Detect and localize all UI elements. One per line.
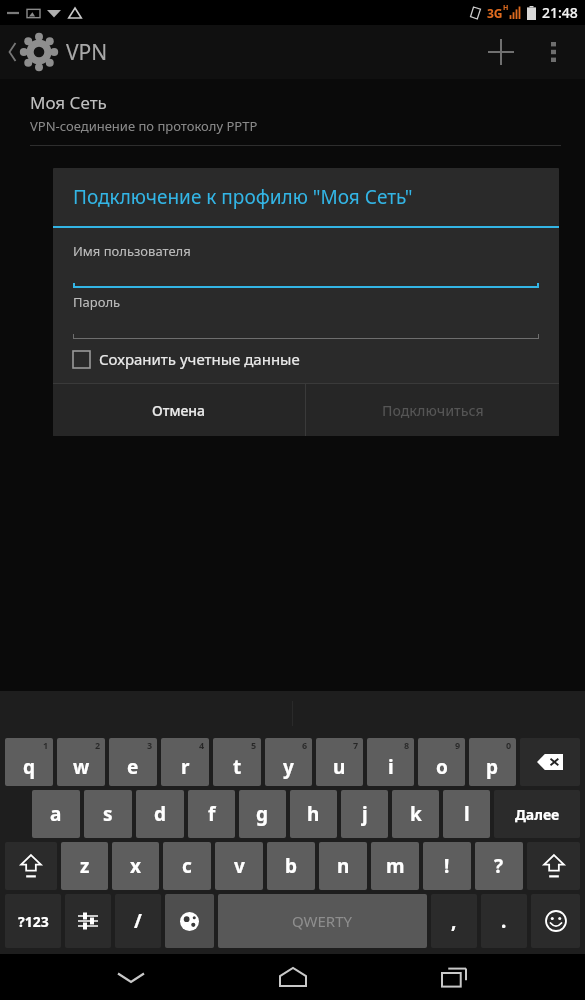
button[interactable]: z [61,842,108,890]
button[interactable]: Shift [527,842,580,890]
button[interactable]: l [443,790,490,838]
button[interactable]: Add VPN profile [477,28,525,76]
staticText: ! [444,853,450,879]
button[interactable]: Shift [5,842,57,890]
button[interactable]: ?123 [5,894,61,948]
button[interactable]: 2 [57,738,105,786]
button[interactable]: Change language [165,894,214,948]
button[interactable]: ! [423,842,471,890]
staticText: , [451,908,457,934]
button[interactable]: s [84,790,132,838]
button[interactable]: 6 [265,738,312,786]
staticText: 6 [302,739,308,751]
button[interactable]: b [267,842,315,890]
staticText: 2 [95,739,101,751]
staticText: r [181,754,190,780]
button[interactable]: Отмена [53,384,305,436]
button[interactable]: Back [8,33,108,71]
button[interactable]: More options [531,30,575,74]
staticText: QWERTY [292,911,353,931]
staticText: 7 [353,739,359,751]
button[interactable]: g [239,790,286,838]
staticText: x [130,853,141,879]
button[interactable]: / [115,894,161,948]
staticText: 0 [506,739,512,751]
button[interactable]: 3 [109,738,157,786]
button[interactable]: Space [218,894,427,948]
staticText: g [256,801,269,827]
button[interactable]: Подключиться [306,384,559,436]
staticText: Подключиться [382,401,484,420]
staticText: u [333,754,346,780]
staticText: w [73,754,90,780]
staticText: i [388,754,394,780]
button[interactable]: 0 [469,738,516,786]
staticText: 3 [147,739,153,751]
staticText: y [283,754,294,780]
button[interactable]: Settings [65,894,111,948]
button[interactable]: m [371,842,419,890]
staticText: k [410,801,422,827]
staticText: 3G [487,5,503,21]
button[interactable]: Далее [494,790,580,838]
button[interactable]: j [341,790,388,838]
staticText: Далее [515,805,560,824]
button[interactable]: h [290,790,337,838]
button[interactable]: 7 [316,738,363,786]
staticText: o [436,754,448,780]
staticText: b [285,853,298,879]
staticText: H [503,3,509,13]
button[interactable]: . [481,894,527,948]
button[interactable]: , [431,894,477,948]
staticText: d [154,801,167,827]
staticText: 5 [251,739,257,751]
staticText: Подключение к профилю "Моя Сеть" [73,184,413,210]
button[interactable]: 4 [161,738,209,786]
staticText: 21:48 [542,3,578,22]
staticText: . [501,908,507,934]
button[interactable]: f [188,790,235,838]
staticText: z [80,853,90,879]
staticText: 9 [455,739,461,751]
staticText: t [233,754,242,780]
button[interactable]: Backspace [520,738,580,786]
button[interactable]: ? [475,842,523,890]
staticText: 8 [404,739,410,751]
button[interactable]: c [163,842,211,890]
staticText: VPN-соединение по протоколу PPTP [30,117,258,135]
staticText: j [362,801,368,827]
button[interactable]: Recent apps [424,957,484,997]
button[interactable]: Hide keyboard [101,957,161,997]
button[interactable]: n [319,842,367,890]
staticText: Пароль [73,293,121,311]
staticText: ?123 [18,912,49,931]
staticText: c [182,853,192,879]
button[interactable]: Сохранить учетные данные [73,349,539,369]
button[interactable]: Emoji [531,894,580,948]
staticText: Отмена [152,401,206,420]
staticText: n [337,853,350,879]
button[interactable]: 1 [5,738,53,786]
staticText: 1 [43,739,49,751]
button[interactable]: k [392,790,439,838]
button[interactable]: Home [263,957,323,997]
staticText: q [23,754,36,780]
staticText: VPN [66,38,108,67]
button[interactable]: 5 [213,738,261,786]
staticText: ? [494,853,504,879]
staticText: Сохранить учетные данные [99,349,300,369]
button[interactable]: v [215,842,263,890]
button[interactable]: 9 [418,738,465,786]
staticText: a [50,801,62,827]
button[interactable]: a [32,790,80,838]
button[interactable]: x [112,842,159,890]
staticText: p [486,754,499,780]
button[interactable]: d [136,790,184,838]
staticText: s [103,801,113,827]
staticText: v [234,853,245,879]
staticText: e [127,754,139,780]
staticText: / [134,908,142,934]
button[interactable]: 8 [367,738,414,786]
staticText: Моя Сеть [30,91,107,114]
staticText: l [464,801,470,827]
